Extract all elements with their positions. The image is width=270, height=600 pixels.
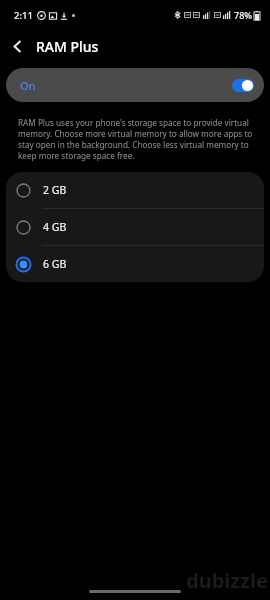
button[interactable]: 2 GB (6, 172, 264, 208)
button[interactable]: Back (0, 30, 34, 62)
staticText: RAM Plus uses your phone's storage space… (18, 117, 256, 161)
staticText: 6 GB (43, 257, 67, 271)
staticText: 4 GB (43, 220, 67, 234)
staticText: dubizzle (186, 567, 268, 594)
button[interactable]: On (6, 68, 264, 102)
button[interactable]: 4 GB (6, 209, 264, 245)
staticText: 2 GB (43, 183, 67, 197)
staticText: RAM Plus (36, 37, 99, 56)
staticText: 78% (234, 9, 252, 21)
button[interactable]: 6 GB (6, 246, 264, 282)
staticText: On (20, 78, 36, 93)
staticText: 2:11 (14, 9, 33, 22)
